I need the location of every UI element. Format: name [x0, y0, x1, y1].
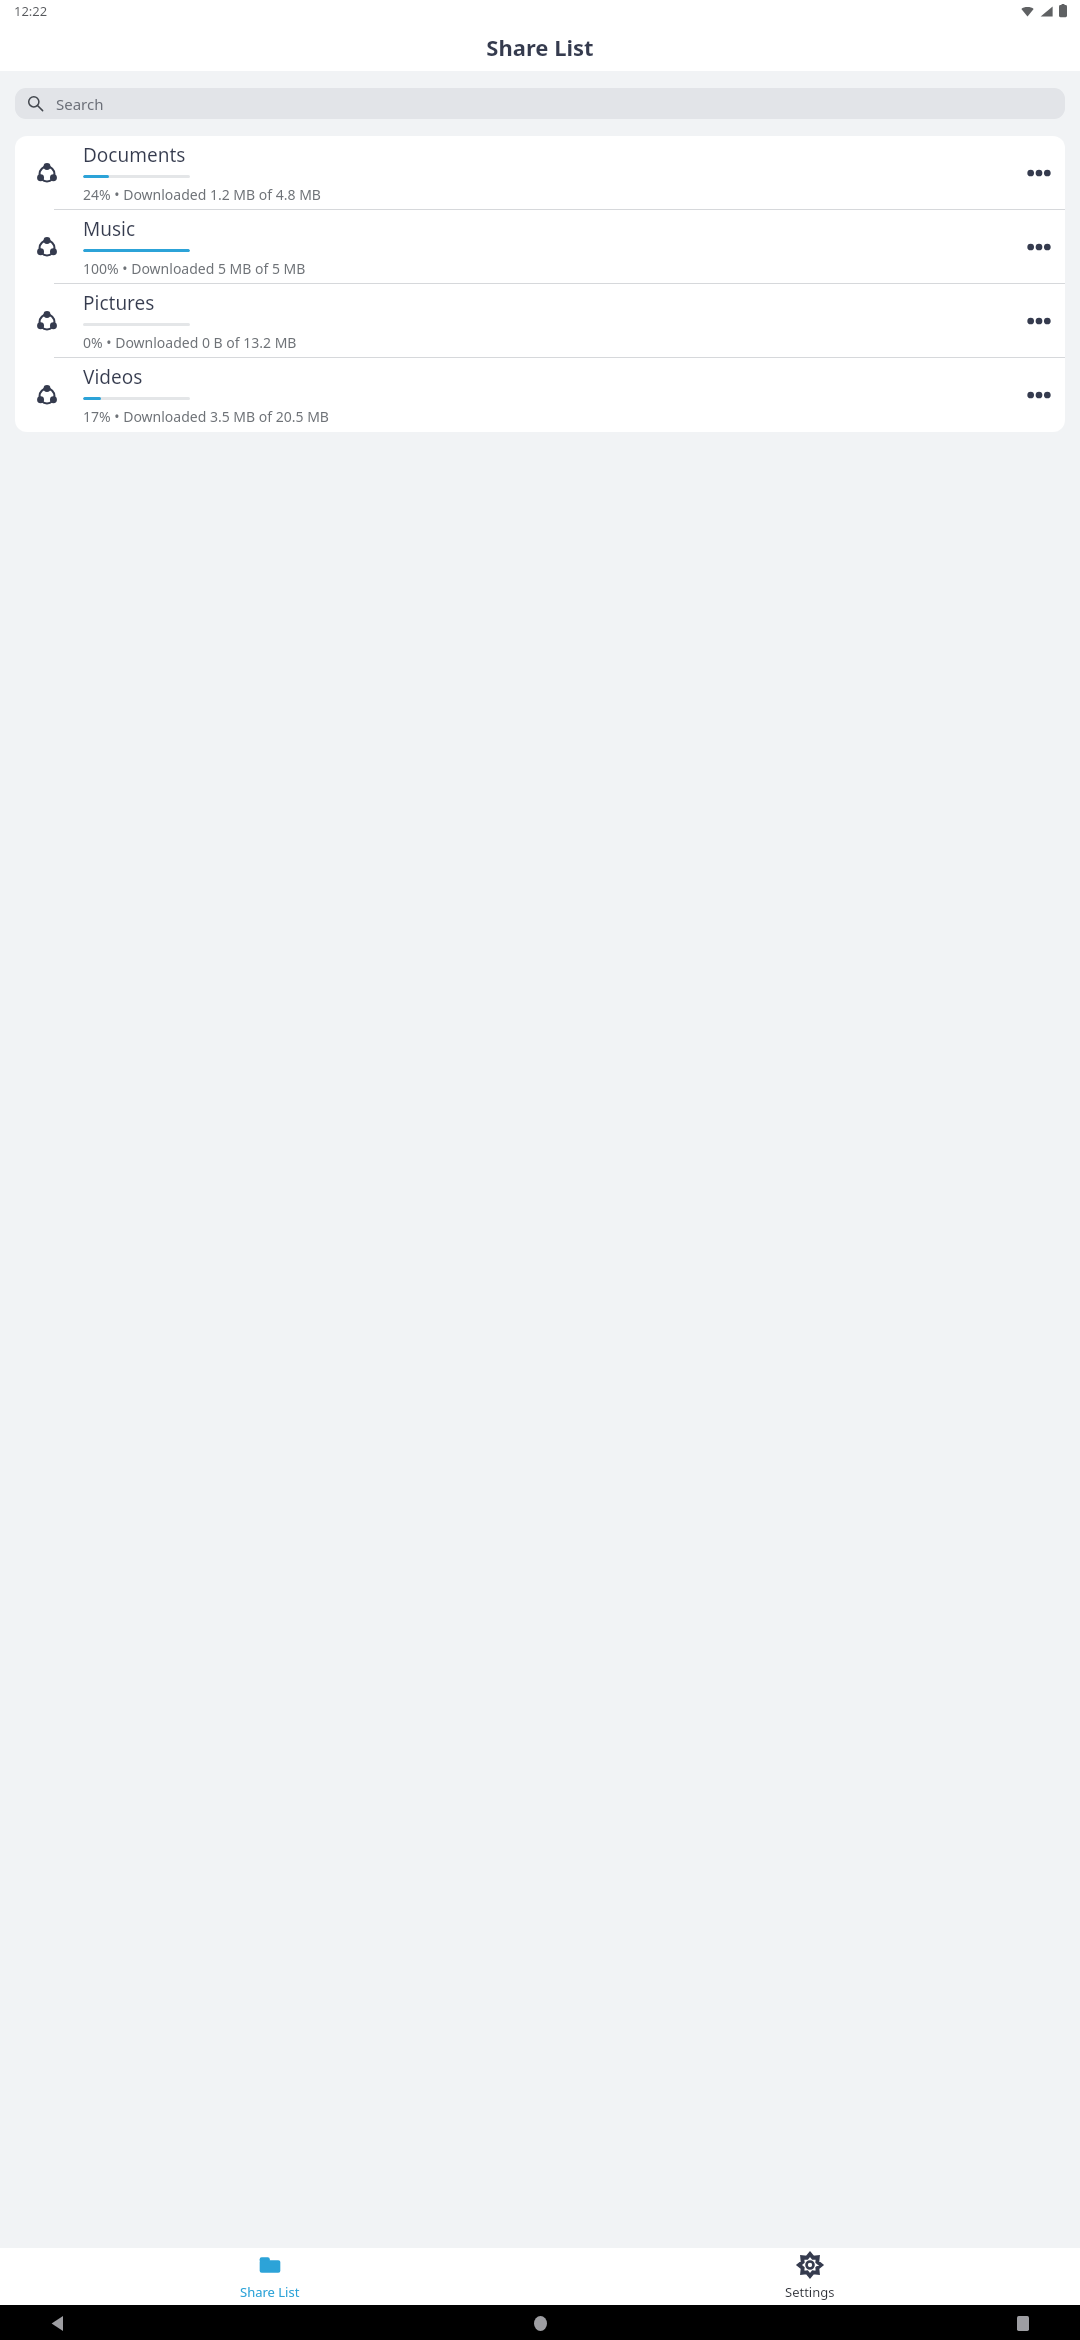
button[interactable]: Search [15, 88, 1065, 119]
button[interactable]: Settings [540, 2248, 1080, 2305]
staticText: 12:22 [14, 2, 48, 20]
staticText: Search [56, 94, 104, 114]
staticText: Music [83, 216, 136, 242]
button[interactable]: Recent apps [1006, 2306, 1040, 2340]
staticText: 100% • Downloaded 5 MB of 5 MB [83, 259, 306, 278]
button[interactable]: Home [523, 2306, 557, 2340]
button[interactable]: Documents [15, 136, 1065, 210]
button[interactable]: Pictures [15, 284, 1065, 358]
staticText: Videos [83, 364, 143, 390]
staticText: Share List [240, 2283, 300, 2301]
staticText: Settings [785, 2283, 835, 2301]
staticText: 17% • Downloaded 3.5 MB of 20.5 MB [83, 407, 329, 426]
staticText: 24% • Downloaded 1.2 MB of 4.8 MB [83, 185, 321, 204]
button[interactable]: More options for Videos [1013, 369, 1065, 421]
staticText: Share List [486, 32, 594, 62]
button[interactable]: Music [15, 210, 1065, 284]
staticText: Documents [83, 142, 186, 168]
button[interactable]: More options for Documents [1013, 147, 1065, 199]
button[interactable]: Share List [0, 2248, 540, 2305]
staticText: 0% • Downloaded 0 B of 13.2 MB [83, 333, 297, 352]
button[interactable]: Back [40, 2306, 74, 2340]
staticText: Pictures [83, 290, 155, 316]
button[interactable]: Videos [15, 358, 1065, 432]
button[interactable]: More options for Music [1013, 221, 1065, 273]
button[interactable]: More options for Pictures [1013, 295, 1065, 347]
